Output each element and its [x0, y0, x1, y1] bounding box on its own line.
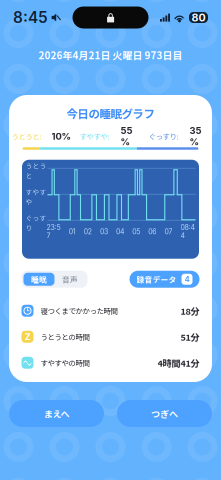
staticText: 8:45 [13, 8, 48, 27]
staticText: 51分 [180, 330, 199, 343]
button[interactable]: つぎへ [117, 400, 212, 427]
staticText: うとうと: [11, 131, 41, 142]
button[interactable]: まえへ [9, 400, 104, 427]
staticText: すやすや [25, 187, 46, 206]
button[interactable]: Z [21, 324, 199, 350]
staticText: 10% [51, 131, 70, 142]
staticText: 寝つくまでかかった時間 [40, 305, 117, 316]
button[interactable]: 寝つくまでかかった時間 [21, 298, 199, 324]
staticText: すやすやの時間 [40, 357, 89, 368]
staticText: 音声 [62, 274, 78, 285]
staticText: 2026年4月21日 火曜日 973日目 [38, 48, 182, 62]
button[interactable]: すやすやの時間 [21, 350, 199, 376]
staticText: 録音データ [136, 274, 176, 285]
staticText: 55% [120, 125, 132, 148]
staticText: 03 [100, 228, 108, 236]
staticText: 01 [69, 228, 76, 236]
button[interactable]: 録音データ [129, 271, 199, 288]
staticText: うとうと [25, 161, 46, 180]
staticText: 04 [116, 228, 124, 236]
staticText: まえへ [43, 407, 69, 420]
staticText: 4時間41分 [157, 356, 199, 369]
staticText: 07 [164, 228, 172, 236]
staticText: 80 [191, 11, 205, 24]
button[interactable]: 睡眠 [23, 273, 54, 286]
staticText: すやすや: [79, 131, 109, 142]
staticText: 睡眠 [31, 274, 47, 285]
staticText: ぐっすり: [148, 131, 178, 142]
staticText: 4 [184, 275, 189, 284]
staticText: うとうとの時間 [40, 331, 89, 342]
staticText: 08:44 [180, 223, 194, 240]
staticText: Z [24, 331, 30, 342]
staticText: 06 [148, 228, 156, 236]
staticText: 05 [132, 228, 140, 236]
staticText: 今日の睡眠グラフ [66, 105, 154, 121]
staticText: つぎへ [151, 407, 178, 420]
staticText: 23:57 [46, 223, 60, 240]
staticText: 18分 [180, 304, 199, 317]
staticText: ぐっすり [25, 213, 46, 232]
button[interactable]: 音声 [54, 273, 85, 286]
staticText: 02 [84, 228, 92, 236]
staticText: 35% [189, 125, 201, 148]
